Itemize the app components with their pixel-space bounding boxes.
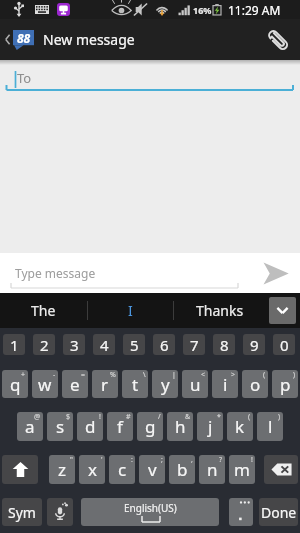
- staticText: 0: [280, 335, 289, 355]
- button[interactable]: Attach: [256, 19, 300, 60]
- staticText: t: [132, 373, 139, 396]
- button[interactable]: e: [62, 370, 88, 398]
- button[interactable]: 2: [33, 334, 55, 355]
- staticText: ): [278, 412, 281, 422]
- staticText: a: [25, 415, 35, 438]
- button[interactable]: 4: [93, 334, 115, 355]
- button[interactable]: 3: [63, 334, 85, 355]
- staticText: 9: [250, 335, 259, 355]
- button[interactable]: Type message: [0, 253, 250, 293]
- staticText: r: [101, 373, 109, 396]
- staticText: I: [128, 301, 133, 320]
- button[interactable]: g: [137, 412, 163, 441]
- button[interactable]: Send: [250, 253, 300, 293]
- staticText: z: [58, 458, 66, 481]
- button[interactable]: p: [272, 370, 298, 398]
- staticText: g: [145, 415, 156, 438]
- button[interactable]: 0: [273, 334, 295, 355]
- staticText: <: [201, 370, 206, 380]
- button[interactable]: f: [107, 412, 133, 441]
- button[interactable]: Backspace: [264, 455, 298, 484]
- button[interactable]: 7: [183, 334, 205, 355]
- button[interactable]: Period and symbols: [229, 498, 253, 526]
- staticText: Sym: [8, 503, 36, 522]
- button[interactable]: Done: [259, 498, 298, 526]
- staticText: b: [177, 458, 188, 481]
- staticText: *: [217, 412, 221, 422]
- button[interactable]: 6: [153, 334, 175, 355]
- button[interactable]: j: [197, 412, 223, 441]
- button[interactable]: d: [77, 412, 103, 441]
- button[interactable]: i: [212, 370, 238, 398]
- staticText: /: [158, 412, 161, 422]
- button[interactable]: Space: [81, 498, 219, 526]
- staticText: To: [17, 69, 32, 87]
- staticText: h: [175, 415, 186, 438]
- staticText: 8: [220, 335, 229, 355]
- button[interactable]: u: [182, 370, 208, 398]
- button[interactable]: Expand suggestions: [269, 297, 296, 324]
- button[interactable]: n: [199, 455, 225, 484]
- staticText: %: [110, 370, 116, 380]
- staticText: 7: [190, 335, 199, 355]
- button[interactable]: Shift: [2, 455, 38, 484]
- staticText: ,: [191, 455, 193, 465]
- staticText: ?: [219, 455, 223, 465]
- button[interactable]: t: [122, 370, 148, 398]
- button[interactable]: z: [49, 455, 75, 484]
- button[interactable]: The: [0, 293, 87, 328]
- button[interactable]: I: [88, 293, 173, 328]
- staticText: x: [88, 458, 97, 481]
- button[interactable]: y: [152, 370, 178, 398]
- button[interactable]: o: [242, 370, 268, 398]
- button[interactable]: h: [167, 412, 193, 441]
- button[interactable]: m: [229, 455, 255, 484]
- button[interactable]: w: [32, 370, 58, 398]
- button[interactable]: c: [109, 455, 135, 484]
- button[interactable]: l: [257, 412, 283, 441]
- button[interactable]: q: [2, 370, 28, 398]
- staticText: k: [235, 415, 245, 438]
- staticText: ;: [161, 455, 163, 465]
- button[interactable]: k: [227, 412, 253, 441]
- button[interactable]: b: [169, 455, 195, 484]
- button[interactable]: 5: [123, 334, 145, 355]
- staticText: 1: [10, 335, 19, 355]
- staticText: !: [251, 455, 253, 465]
- staticText: Type message: [15, 265, 96, 281]
- button[interactable]: 1: [3, 334, 25, 355]
- button[interactable]: r: [92, 370, 118, 398]
- staticText: $: [66, 412, 71, 422]
- staticText: ): [293, 370, 296, 380]
- staticText: p: [280, 373, 291, 396]
- button[interactable]: 9: [243, 334, 265, 355]
- staticText: &: [185, 412, 191, 422]
- staticText: 11:29 AM: [228, 2, 281, 18]
- button[interactable]: Thanks: [174, 293, 266, 328]
- button[interactable]: Voice input: [47, 498, 73, 526]
- button[interactable]: Sym: [2, 498, 42, 526]
- staticText: u: [190, 373, 201, 396]
- button[interactable]: s: [47, 412, 73, 441]
- button[interactable]: v: [139, 455, 165, 484]
- button[interactable]: 8: [213, 334, 235, 355]
- button[interactable]: a: [17, 412, 43, 441]
- staticText: n: [207, 458, 218, 481]
- staticText: 6: [160, 335, 169, 355]
- staticText: s: [56, 415, 65, 438]
- staticText: The: [31, 301, 56, 320]
- staticText: m: [234, 458, 250, 481]
- button[interactable]: x: [79, 455, 105, 484]
- staticText: d: [85, 415, 96, 438]
- staticText: c: [118, 458, 127, 481]
- staticText: 3: [70, 335, 79, 355]
- staticText: 2: [40, 335, 49, 355]
- staticText: English(US): [124, 501, 177, 515]
- staticText: ': [101, 455, 103, 465]
- staticText: w: [38, 373, 52, 396]
- staticText: !: [99, 412, 101, 422]
- staticText: v: [148, 458, 157, 481]
- staticText: New message: [43, 30, 135, 49]
- button[interactable]: Navigate up: [0, 19, 37, 60]
- staticText: |: [172, 370, 176, 380]
